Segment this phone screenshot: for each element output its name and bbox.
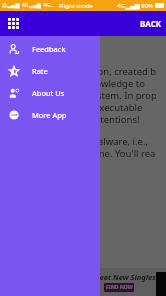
- staticText: FIND NOW: [106, 284, 133, 291]
- staticText: Feedback: [32, 44, 66, 54]
- button[interactable]: FIND NOW: [104, 283, 134, 292]
- button[interactable]: About Us: [0, 82, 100, 104]
- staticText: This is a simple application, created by…: [0, 65, 156, 126]
- button[interactable]: BACK: [140, 18, 162, 29]
- staticText: Meet New Singles: [93, 272, 156, 282]
- staticText: This app is detected a malware, i.e., Tr…: [0, 135, 156, 172]
- staticText: 4G ▂▄▆ 99%: [117, 2, 154, 10]
- staticText: Flight mode: [59, 2, 93, 10]
- button[interactable]: Feedback: [0, 38, 100, 60]
- staticText: About Us: [32, 88, 65, 98]
- staticText: BACK: [140, 18, 162, 29]
- button[interactable]: Rate: [0, 60, 100, 82]
- staticText: Rate: [32, 66, 48, 76]
- button[interactable]: Open navigation menu: [5, 15, 22, 32]
- staticText: Ⓖ ▂▄▆ 4G ▂▄▆ 4G…: [2, 2, 54, 9]
- staticText: More App: [32, 110, 67, 120]
- button[interactable]: [0, 0, 166, 296]
- button[interactable]: More App: [0, 104, 100, 126]
